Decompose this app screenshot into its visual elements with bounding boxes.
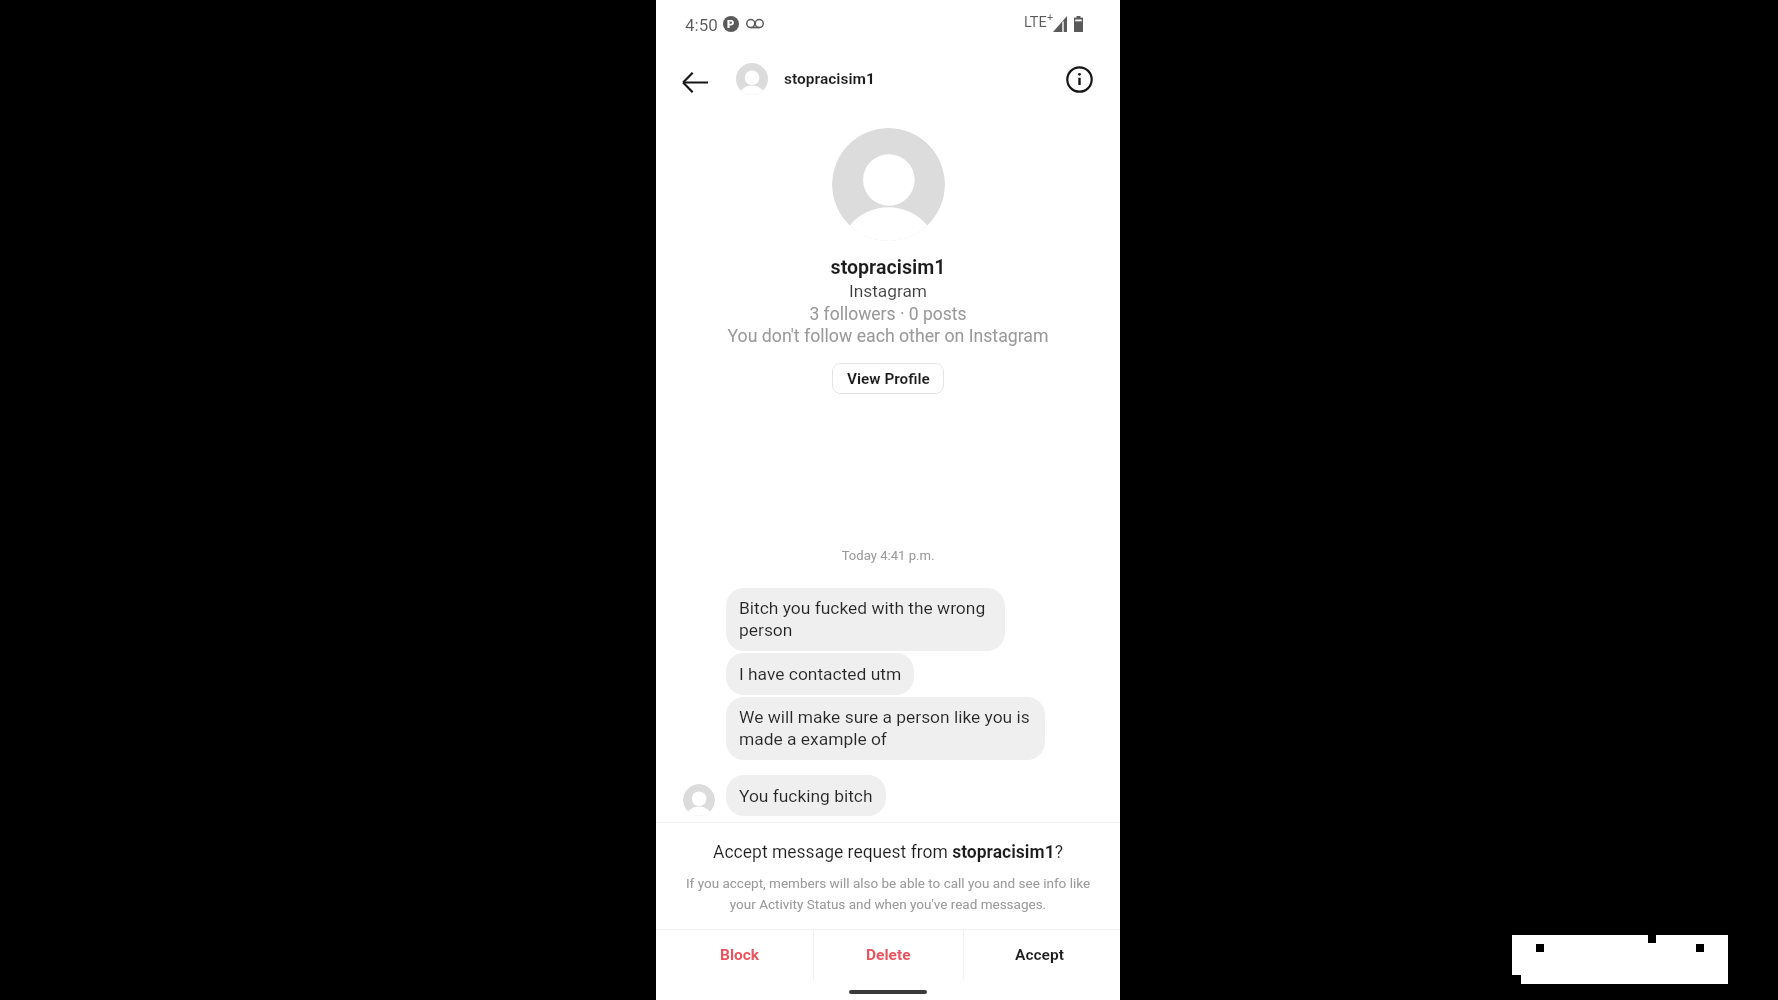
- staticText: If you accept, members will also be able…: [656, 875, 1120, 912]
- button[interactable]: Sender avatar: [683, 784, 715, 816]
- button[interactable]: Profile photo of stopracisim1: [832, 128, 945, 241]
- staticText: I have contacted utm: [739, 664, 901, 684]
- staticText: 4:50: [685, 15, 718, 35]
- button[interactable]: Accept: [964, 930, 1120, 980]
- staticText: Bitch you fucked with the wrong person: [739, 598, 986, 641]
- button[interactable]: Back: [674, 62, 715, 103]
- staticText: View Profile: [847, 370, 930, 388]
- staticText: Delete: [866, 946, 911, 964]
- staticText: You fucking bitch: [739, 786, 873, 806]
- staticText: stopracisim1: [784, 70, 875, 88]
- staticText: We will make sure a person like you is m…: [739, 707, 1030, 750]
- button[interactable]: Delete: [814, 930, 963, 980]
- staticText: stopracisim1: [656, 256, 1120, 279]
- button[interactable]: We will make sure a person like you is m…: [726, 697, 1045, 760]
- staticText: Accept: [1015, 946, 1064, 964]
- button[interactable]: I have contacted utm: [726, 653, 914, 695]
- staticText: Today 4:41 p.m.: [656, 548, 1120, 563]
- button[interactable]: Bitch you fucked with the wrong person: [726, 588, 1005, 651]
- button[interactable]: You fucking bitch: [726, 775, 886, 816]
- staticText: Accept message request from stopracisim1…: [656, 842, 1120, 863]
- staticText: LTE: [1024, 14, 1047, 31]
- button[interactable]: Block: [656, 930, 813, 980]
- button[interactable]: Conversation information: [1058, 58, 1101, 101]
- staticText: Block: [720, 946, 760, 964]
- button[interactable]: View Profile: [832, 363, 944, 394]
- staticText: +: [1047, 11, 1054, 24]
- staticText: You don't follow each other on Instagram: [656, 326, 1120, 347]
- button[interactable]: stopracisim1: [736, 56, 875, 102]
- staticText: Instagram: [656, 281, 1120, 301]
- staticText: P: [727, 18, 735, 31]
- staticText: 3 followers · 0 posts: [656, 304, 1120, 325]
